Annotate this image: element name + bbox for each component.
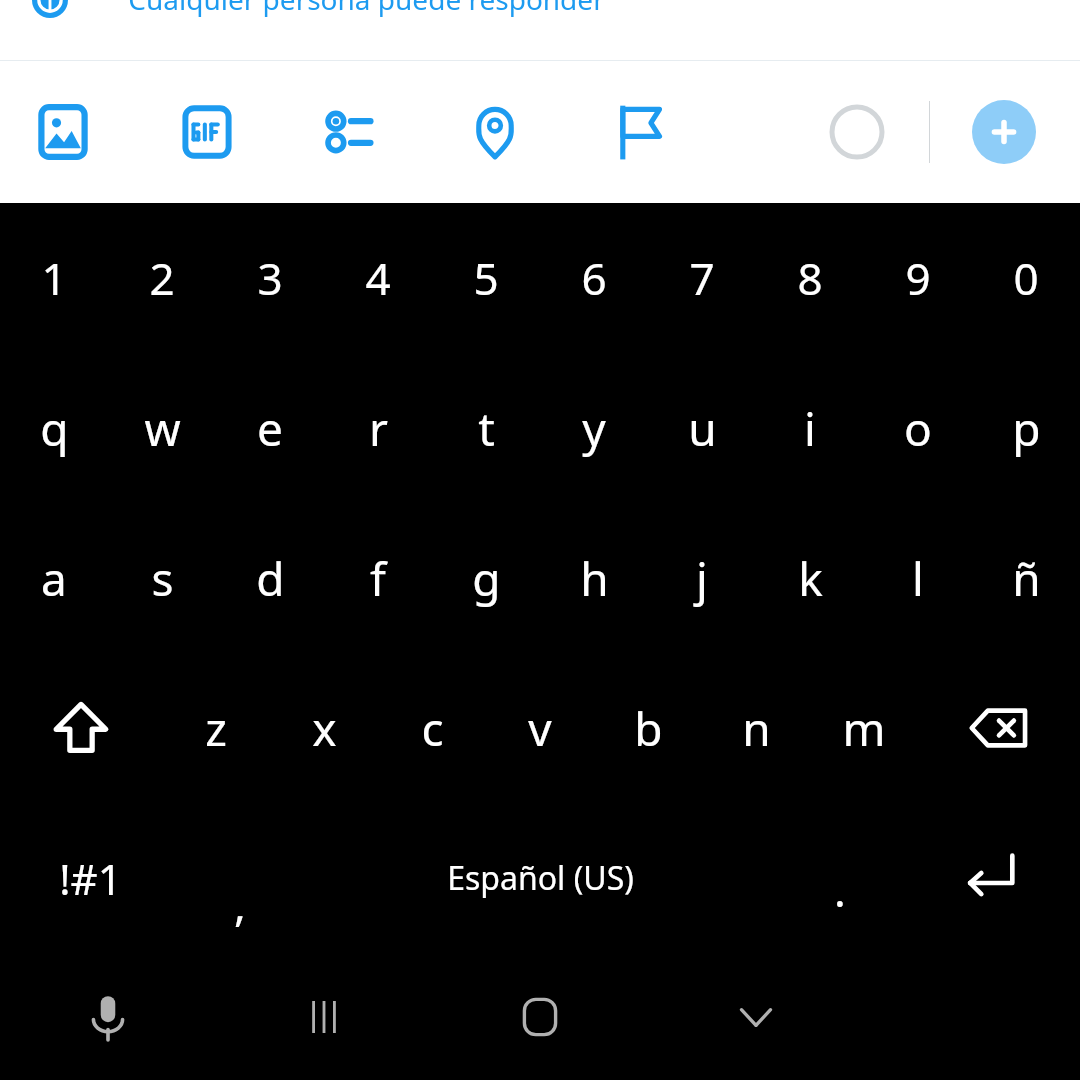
- staticText: 1: [41, 248, 67, 308]
- staticText: t: [478, 397, 495, 460]
- button[interactable]: Character counter: [821, 96, 893, 168]
- button[interactable]: e: [216, 353, 324, 503]
- button[interactable]: 2: [108, 203, 216, 353]
- staticText: .: [834, 860, 846, 920]
- button[interactable]: v: [486, 653, 594, 803]
- button[interactable]: s: [108, 503, 216, 653]
- staticText: m: [842, 697, 886, 760]
- button[interactable]: g: [432, 503, 540, 653]
- button[interactable]: Schedule: [598, 91, 680, 173]
- button[interactable]: 7: [648, 203, 756, 353]
- button[interactable]: Add location: [454, 91, 536, 173]
- staticText: d: [256, 547, 285, 610]
- staticText: y: [582, 397, 606, 460]
- staticText: z: [205, 697, 227, 760]
- button[interactable]: Recents: [216, 953, 432, 1080]
- staticText: 4: [365, 248, 391, 308]
- staticText: k: [798, 547, 823, 610]
- staticText: b: [634, 697, 663, 760]
- staticText: a: [41, 547, 67, 610]
- button[interactable]: Cualquier persona puede responder: [0, 0, 1080, 60]
- button[interactable]: p: [972, 353, 1080, 503]
- staticText: r: [369, 397, 388, 460]
- button[interactable]: k: [756, 503, 864, 653]
- button[interactable]: 8: [756, 203, 864, 353]
- button[interactable]: Shift: [0, 653, 162, 803]
- button[interactable]: .: [780, 803, 900, 953]
- button[interactable]: Voice input: [0, 953, 216, 1080]
- button[interactable]: 4: [324, 203, 432, 353]
- staticText: c: [421, 697, 444, 760]
- button[interactable]: n: [702, 653, 810, 803]
- button[interactable]: a: [0, 503, 108, 653]
- button[interactable]: ,: [180, 803, 300, 953]
- button[interactable]: j: [648, 503, 756, 653]
- button[interactable]: 5: [432, 203, 540, 353]
- staticText: p: [1012, 397, 1041, 460]
- button[interactable]: z: [162, 653, 270, 803]
- staticText: Español (US): [447, 856, 634, 900]
- button[interactable]: f: [324, 503, 432, 653]
- button[interactable]: 6: [540, 203, 648, 353]
- button[interactable]: o: [864, 353, 972, 503]
- button[interactable]: q: [0, 353, 108, 503]
- button[interactable]: Home: [432, 953, 648, 1080]
- staticText: 3: [257, 248, 283, 308]
- button[interactable]: Add GIF: [166, 91, 248, 173]
- button[interactable]: Backspace: [918, 653, 1080, 803]
- staticText: 2: [149, 248, 175, 308]
- button[interactable]: Enter: [900, 803, 1080, 953]
- staticText: u: [688, 397, 717, 460]
- staticText: o: [904, 397, 932, 460]
- staticText: Cualquier persona puede responder: [128, 0, 605, 18]
- button[interactable]: Add tweet: [966, 94, 1042, 170]
- staticText: !#1: [59, 850, 122, 907]
- staticText: 7: [689, 248, 715, 308]
- staticText: v: [528, 697, 552, 760]
- button[interactable]: Create poll: [310, 91, 392, 173]
- staticText: 8: [797, 248, 823, 308]
- staticText: 6: [581, 248, 607, 308]
- button[interactable]: 1: [0, 203, 108, 353]
- button[interactable]: Español (US): [300, 803, 780, 953]
- staticText: h: [580, 547, 609, 610]
- staticText: ñ: [1012, 547, 1041, 610]
- staticText: f: [370, 547, 386, 610]
- button[interactable]: 0: [972, 203, 1080, 353]
- staticText: x: [312, 697, 337, 760]
- button[interactable]: Add photo: [22, 91, 104, 173]
- staticText: g: [472, 547, 501, 610]
- staticText: s: [151, 547, 174, 610]
- button[interactable]: y: [540, 353, 648, 503]
- staticText: 5: [473, 248, 499, 308]
- button[interactable]: l: [864, 503, 972, 653]
- staticText: l: [912, 547, 924, 610]
- staticText: ,: [234, 874, 246, 934]
- button[interactable]: h: [540, 503, 648, 653]
- staticText: q: [40, 397, 69, 460]
- button[interactable]: 3: [216, 203, 324, 353]
- button[interactable]: !#1: [0, 803, 180, 953]
- staticText: i: [804, 397, 816, 460]
- button[interactable]: x: [270, 653, 378, 803]
- staticText: w: [144, 397, 181, 460]
- button[interactable]: d: [216, 503, 324, 653]
- button[interactable]: u: [648, 353, 756, 503]
- staticText: e: [257, 397, 283, 460]
- staticText: n: [742, 697, 771, 760]
- button[interactable]: Hide keyboard: [648, 953, 864, 1080]
- staticText: 9: [905, 248, 931, 308]
- staticText: j: [696, 547, 708, 610]
- button[interactable]: 9: [864, 203, 972, 353]
- button[interactable]: r: [324, 353, 432, 503]
- button[interactable]: i: [756, 353, 864, 503]
- button[interactable]: w: [108, 353, 216, 503]
- button[interactable]: b: [594, 653, 702, 803]
- staticText: 0: [1013, 248, 1039, 308]
- button[interactable]: c: [378, 653, 486, 803]
- button[interactable]: t: [432, 353, 540, 503]
- button[interactable]: m: [810, 653, 918, 803]
- button[interactable]: ñ: [972, 503, 1080, 653]
